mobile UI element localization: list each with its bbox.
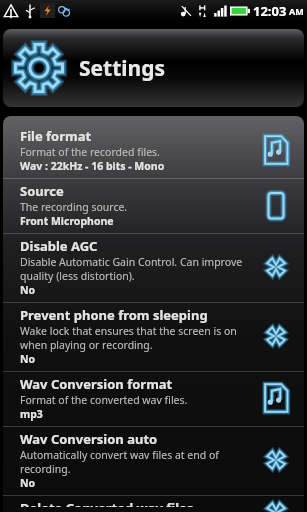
button[interactable]: Source (3, 179, 304, 233)
staticText: Settings (79, 54, 166, 83)
staticText: Disable AGC (20, 237, 98, 255)
staticText: The recording source. (20, 200, 128, 214)
staticText: when playing or recording. (20, 338, 153, 352)
staticText: Wav Conversion format (20, 375, 173, 393)
staticText: Wav : 22kHz - 16 bits - Mono (20, 159, 165, 173)
staticText: Format of the converted wav files. (20, 393, 188, 407)
button[interactable]: Prevent phone from sleeping (3, 303, 304, 371)
button[interactable]: File format (3, 124, 304, 178)
staticText: 12:03 (253, 2, 287, 20)
staticText: Disable Automatic Gain Control. Can impr… (20, 255, 243, 269)
staticText: Wav Conversion auto (20, 430, 158, 448)
staticText: Wake lock that ensures that the screen i… (20, 324, 237, 338)
staticText: Automatically convert wav files at end o… (20, 448, 219, 462)
staticText: quality (less distortion). (20, 269, 135, 283)
staticText: No (20, 352, 36, 366)
staticText: AM (289, 5, 304, 17)
staticText: No (20, 283, 36, 297)
staticText: recording. (20, 462, 71, 476)
staticText: Format of the recorded files. (20, 145, 160, 159)
button[interactable]: Wav Conversion auto (3, 427, 304, 495)
button[interactable]: Delete Converted wav files (3, 496, 304, 512)
staticText: Source (20, 182, 64, 200)
staticText: mp3 (20, 407, 43, 421)
button[interactable]: Wav Conversion format (3, 372, 304, 426)
button[interactable]: Disable AGC (3, 234, 304, 302)
staticText: Prevent phone from sleeping (20, 306, 208, 324)
staticText: File format (20, 127, 92, 145)
staticText: Front Microphone (20, 214, 114, 228)
staticText: No (20, 476, 36, 490)
staticText: Delete Converted wav files (20, 499, 194, 507)
